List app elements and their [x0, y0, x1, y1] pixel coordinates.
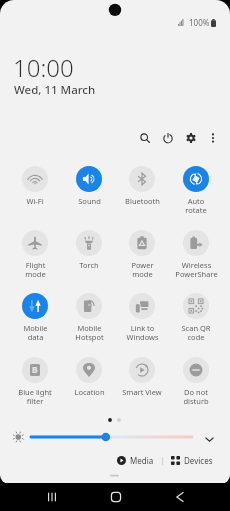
staticText: Wed, 11 March: [14, 82, 96, 98]
staticText: Media: [130, 455, 154, 466]
staticText: Power mode: [131, 260, 154, 280]
button[interactable]: Torch: [62, 230, 116, 270]
staticText: B: [32, 364, 38, 376]
button[interactable]: Expand: [200, 430, 218, 448]
staticText: Wireless PowerShare: [175, 260, 218, 280]
button[interactable]: Mobile data: [8, 293, 62, 343]
staticText: Link to Windows: [126, 323, 159, 343]
button[interactable]: Settings: [182, 129, 200, 147]
button[interactable]: Sound: [62, 166, 116, 206]
staticText: Wi-Fi: [26, 196, 44, 206]
button[interactable]: Power off: [159, 129, 177, 147]
button[interactable]: Auto rotate: [169, 166, 223, 216]
staticText: Blue light filter: [18, 387, 52, 407]
button[interactable]: Search: [136, 129, 154, 147]
button[interactable]: Smart View: [115, 357, 169, 397]
staticText: Bluetooth: [125, 196, 160, 206]
staticText: Do not disturb: [183, 387, 209, 407]
staticText: Mobile data: [23, 323, 48, 343]
button[interactable]: Media: [115, 455, 156, 466]
button[interactable]: B: [8, 357, 62, 407]
staticText: Smart View: [122, 387, 162, 397]
button[interactable]: Flight mode: [8, 230, 62, 280]
button[interactable]: Wireless PowerShare: [169, 230, 223, 280]
button[interactable]: Mobile Hotspot: [62, 293, 116, 343]
staticText: Flight mode: [25, 260, 46, 280]
staticText: Auto rotate: [185, 196, 207, 216]
button[interactable]: Recents: [38, 483, 66, 511]
staticText: Devices: [184, 455, 213, 466]
staticText: Sound: [78, 196, 101, 206]
button[interactable]: Devices: [169, 455, 215, 466]
button[interactable]: Scan QR code: [169, 293, 223, 343]
button[interactable]: Wi-Fi: [8, 166, 62, 206]
button[interactable]: Brightness: [0, 429, 230, 449]
staticText: Mobile Hotspot: [75, 323, 104, 343]
button[interactable]: More options: [204, 129, 222, 147]
button[interactable]: Link to Windows: [115, 293, 169, 343]
button[interactable]: Location: [62, 357, 116, 397]
staticText: Location: [74, 387, 105, 397]
button[interactable]: Back: [166, 483, 194, 511]
staticText: 10:00: [13, 51, 74, 84]
button[interactable]: Power mode: [115, 230, 169, 280]
staticText: Scan QR code: [181, 323, 211, 343]
staticText: 100%: [189, 17, 210, 28]
button[interactable]: Bluetooth: [115, 166, 169, 206]
button[interactable]: Do not disturb: [169, 357, 223, 407]
button[interactable]: Home: [102, 483, 130, 511]
staticText: Torch: [79, 260, 99, 270]
